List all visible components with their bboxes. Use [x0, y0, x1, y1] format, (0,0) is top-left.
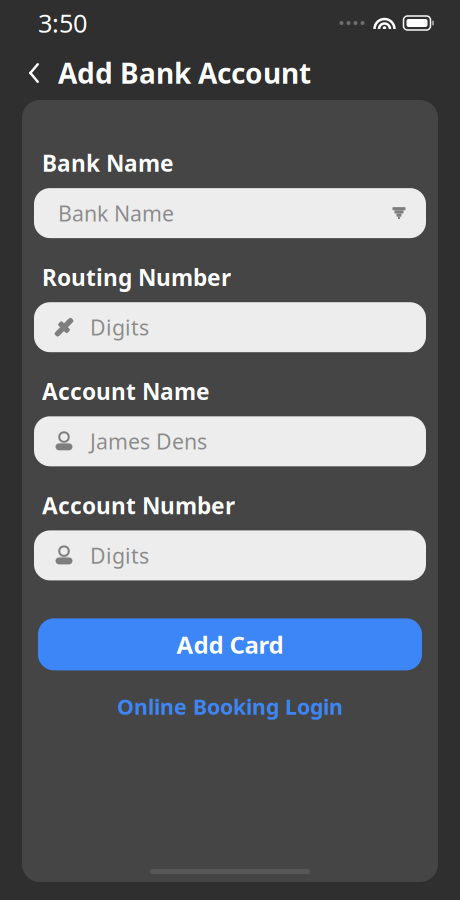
- staticText: 3:50: [38, 6, 87, 40]
- button[interactable]: Online Booking Login: [34, 686, 426, 726]
- staticText: Add Bank Account: [58, 54, 311, 92]
- staticText: Account Name: [42, 376, 210, 406]
- staticText: Bank Name: [42, 148, 174, 178]
- button[interactable]: Digits: [34, 530, 426, 580]
- button[interactable]: Add Card: [38, 618, 422, 670]
- staticText: Add Card: [176, 628, 283, 660]
- staticText: Online Booking Login: [117, 692, 343, 720]
- button[interactable]: Digits: [34, 302, 426, 352]
- button[interactable]: Back: [14, 51, 54, 95]
- staticText: Bank Name: [58, 199, 174, 227]
- staticText: Routing Number: [42, 262, 231, 292]
- button[interactable]: James Dens: [34, 416, 426, 466]
- staticText: Digits: [90, 313, 149, 341]
- staticText: Account Number: [42, 490, 235, 520]
- button[interactable]: Bank Name: [34, 188, 426, 238]
- staticText: James Dens: [90, 427, 207, 455]
- staticText: Digits: [90, 541, 149, 569]
